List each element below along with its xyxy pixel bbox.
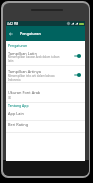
- staticText: 30: [8, 96, 68, 100]
- button[interactable]: [6, 120, 85, 132]
- staticText: Tampilkan Artinya: [8, 69, 41, 74]
- button[interactable]: [6, 65, 85, 82]
- staticText: Menampilkan bacaan Arab dalam tulisan la…: [8, 55, 68, 62]
- staticText: Pengaturan: [8, 43, 28, 48]
- button[interactable]: [6, 110, 85, 120]
- staticText: Pengaturan: [20, 31, 41, 36]
- staticText: Beri Rating: [8, 122, 29, 127]
- staticText: Ukuran Font Arab: [8, 90, 41, 95]
- staticText: Tentang App: [8, 103, 29, 108]
- staticText: Tampilkan Latin: [8, 51, 37, 56]
- button[interactable]: Toggle: [74, 73, 81, 77]
- button[interactable]: Toggle: [74, 54, 81, 58]
- staticText: App Lain: [8, 111, 24, 116]
- button[interactable]: [6, 82, 85, 102]
- staticText: 4:42 PM: [7, 22, 19, 26]
- button[interactable]: [6, 48, 85, 65]
- staticText: Menampilkan teks arti dalam bahasa Indon…: [8, 74, 68, 81]
- button[interactable]: Back: [7, 30, 14, 37]
